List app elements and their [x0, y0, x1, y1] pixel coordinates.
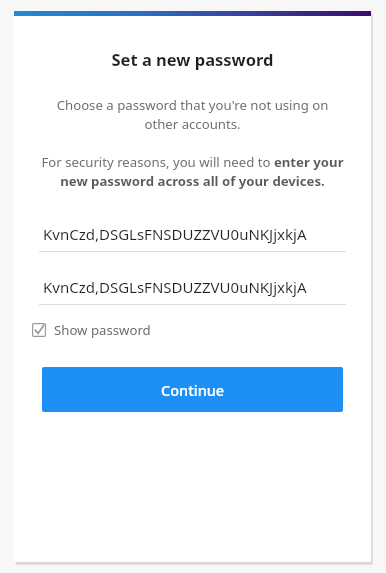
staticText: Show password — [54, 321, 151, 339]
staticText: KvnCzd,DSGLsFNSDUZZVU0uNKJjxkjA — [43, 277, 307, 297]
staticText: Set a new password — [111, 48, 274, 70]
staticText: Choose a password that you're not using … — [42, 96, 343, 133]
staticText: KvnCzd,DSGLsFNSDUZZVU0uNKJjxkjA — [43, 224, 307, 244]
button[interactable]: Show password — [28, 317, 357, 343]
other: Show password — [32, 323, 46, 337]
staticText: For security reasons, you will need to e… — [32, 153, 353, 190]
button[interactable]: KvnCzd,DSGLsFNSDUZZVU0uNKJjxkjA — [39, 216, 346, 252]
button[interactable]: Continue — [42, 367, 343, 412]
staticText: Continue — [161, 380, 225, 400]
button[interactable]: KvnCzd,DSGLsFNSDUZZVU0uNKJjxkjA — [39, 269, 346, 305]
